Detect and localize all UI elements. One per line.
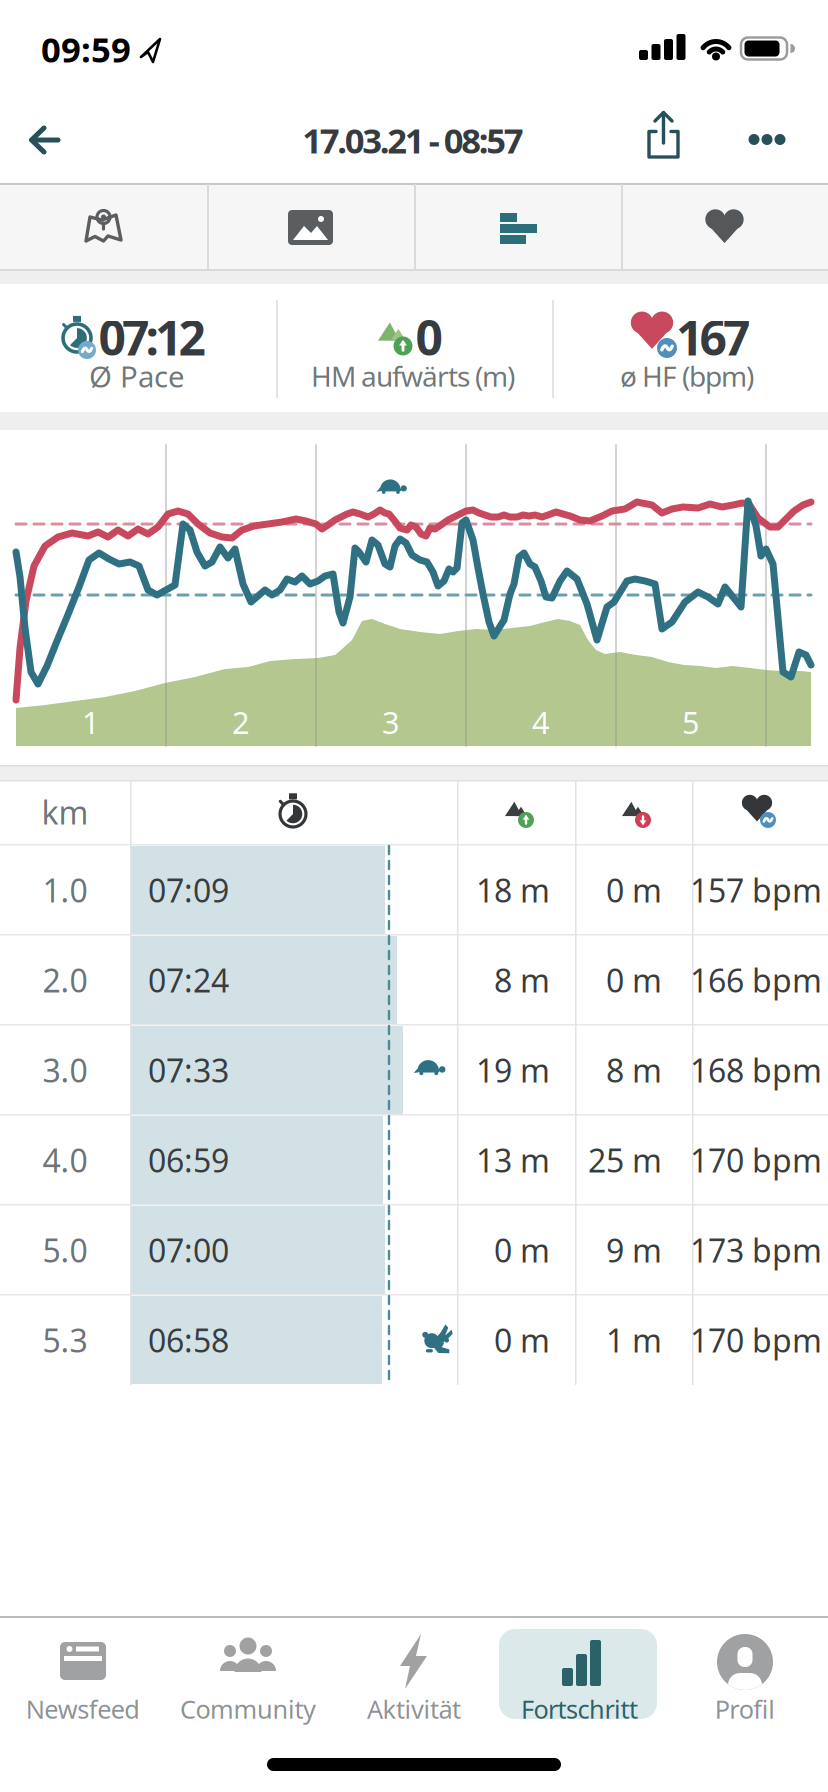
staticText: 3.0: [42, 1049, 87, 1091]
staticText: 9 m: [606, 1229, 662, 1271]
staticText: 18 m: [476, 869, 550, 911]
staticText: 19 m: [476, 1049, 550, 1091]
staticText: 8 m: [494, 959, 550, 1001]
staticText: 0: [415, 305, 442, 369]
staticText: 5.3: [42, 1319, 87, 1361]
staticText: Profil: [715, 1692, 775, 1726]
staticText: 2: [232, 702, 250, 742]
staticText: 07:33: [148, 1049, 229, 1091]
staticText: 166 bpm: [690, 959, 822, 1001]
staticText: 13 m: [476, 1139, 550, 1181]
staticText: 07:09: [148, 869, 229, 911]
staticText: 06:59: [148, 1139, 229, 1181]
staticText: 09:59: [41, 26, 131, 72]
staticText: 4: [532, 702, 550, 742]
staticText: ø HF (bpm): [620, 357, 754, 395]
staticText: 1.0: [42, 869, 87, 911]
staticText: 0 m: [606, 869, 662, 911]
staticText: 170 bpm: [690, 1319, 822, 1361]
button[interactable]: Fortschritt: [497, 1618, 662, 1768]
staticText: Community: [180, 1692, 316, 1726]
staticText: 4.0: [42, 1139, 87, 1181]
staticText: 8 m: [606, 1049, 662, 1091]
staticText: 06:58: [148, 1319, 229, 1361]
staticText: km: [41, 791, 88, 833]
button[interactable]: More: [729, 95, 805, 183]
staticText: Fortschritt: [521, 1692, 638, 1726]
staticText: 5: [682, 702, 700, 742]
button[interactable]: Profil: [662, 1618, 828, 1768]
staticText: 168 bpm: [690, 1049, 822, 1091]
staticText: 0 m: [606, 959, 662, 1001]
button[interactable]: Share: [625, 93, 701, 181]
button[interactable]: Aktivität: [331, 1618, 497, 1768]
staticText: 170 bpm: [690, 1139, 822, 1181]
button[interactable]: Photos: [207, 183, 414, 271]
staticText: 07:24: [148, 959, 229, 1001]
staticText: 07:12: [98, 305, 205, 369]
staticText: 17.03.21 - 08:57: [302, 117, 524, 163]
button[interactable]: Statistics: [414, 183, 621, 271]
button[interactable]: Newsfeed: [0, 1618, 166, 1768]
staticText: 157 bpm: [690, 869, 822, 911]
button[interactable]: Map: [0, 183, 207, 271]
staticText: 2.0: [42, 959, 87, 1001]
staticText: 173 bpm: [690, 1229, 822, 1271]
staticText: 1: [82, 702, 100, 742]
staticText: HM aufwärts (m): [311, 357, 515, 395]
staticText: 5.0: [42, 1229, 87, 1271]
staticText: 25 m: [588, 1139, 662, 1181]
staticText: Ø Pace: [89, 356, 185, 395]
staticText: 167: [676, 305, 750, 369]
staticText: Aktivität: [367, 1692, 461, 1726]
staticText: 0 m: [494, 1229, 550, 1271]
staticText: 0 m: [494, 1319, 550, 1361]
staticText: 3: [382, 702, 400, 742]
button[interactable]: Community: [166, 1618, 331, 1768]
staticText: 07:00: [148, 1229, 229, 1271]
staticText: Newsfeed: [26, 1692, 140, 1726]
button[interactable]: Back: [0, 96, 88, 184]
button[interactable]: Like: [621, 183, 828, 271]
staticText: 1 m: [606, 1319, 662, 1361]
